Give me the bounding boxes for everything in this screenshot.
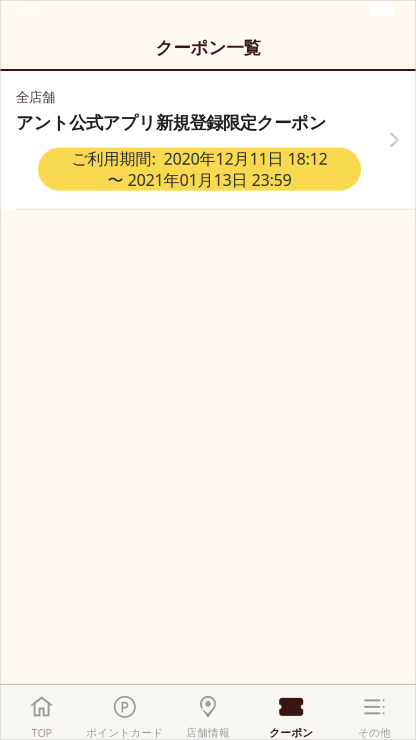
staticText: 〜 2021年01月13日 23:59 — [107, 169, 291, 190]
button[interactable]: ポイントカード — [83, 695, 166, 739]
button[interactable]: 店舗情報 — [166, 695, 250, 739]
staticText: アント公式アプリ新規登録限定クーポン — [16, 112, 327, 134]
staticText: TOP — [32, 726, 52, 740]
button[interactable]: クーポン — [250, 695, 333, 739]
staticText: 店舗情報 — [186, 726, 230, 739]
staticText: ポイントカード — [86, 726, 163, 739]
staticText: ご利用期間: 2020年12月11日 18:12 — [71, 148, 327, 169]
button[interactable]: TOP — [0, 695, 83, 740]
staticText: その他 — [358, 726, 391, 739]
button[interactable]: 全店舗 — [0, 71, 416, 210]
staticText: クーポン — [269, 726, 313, 739]
staticText: クーポン一覧 — [155, 37, 260, 59]
staticText: 全店舗 — [16, 89, 55, 105]
button[interactable]: その他 — [333, 695, 416, 739]
